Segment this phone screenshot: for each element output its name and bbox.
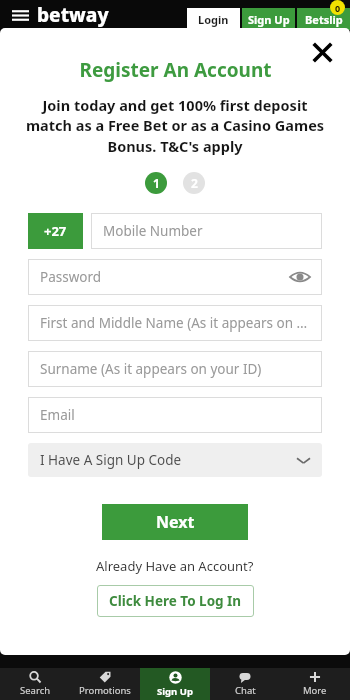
button[interactable]: Betslip bbox=[297, 8, 350, 30]
staticText: 0 bbox=[335, 2, 341, 14]
button[interactable]: Promotions bbox=[70, 668, 140, 700]
button[interactable]: 1 bbox=[145, 172, 167, 194]
staticText: Already Have an Account? bbox=[96, 557, 254, 575]
staticText: Mobile Number bbox=[103, 222, 203, 240]
staticText: Sign Up bbox=[248, 12, 290, 27]
button[interactable]: Show password bbox=[287, 264, 313, 290]
staticText: Login bbox=[198, 12, 229, 27]
staticText: Register An Account bbox=[79, 57, 272, 83]
staticText: Sign Up bbox=[157, 685, 193, 698]
staticText: Join today and get 100% first deposit ma… bbox=[20, 95, 330, 157]
staticText: +27 bbox=[44, 222, 67, 240]
button[interactable]: Chat bbox=[210, 668, 280, 700]
staticText: Click Here To Log In bbox=[109, 592, 242, 610]
button[interactable]: Sign Up bbox=[140, 668, 210, 700]
button[interactable]: Click Here To Log In bbox=[97, 585, 254, 617]
button[interactable]: Login bbox=[187, 8, 240, 30]
button[interactable]: Next bbox=[102, 504, 248, 540]
button[interactable]: Mobile Number bbox=[91, 213, 322, 249]
staticText: Betslip bbox=[305, 12, 343, 27]
button[interactable]: Sign Up bbox=[242, 8, 295, 30]
button[interactable]: Email bbox=[28, 397, 322, 433]
staticText: Password bbox=[40, 268, 102, 286]
button[interactable]: +27 bbox=[28, 213, 83, 249]
button[interactable]: More bbox=[280, 668, 350, 700]
button[interactable]: Menu bbox=[10, 5, 30, 25]
button[interactable]: I Have A Sign Up Code bbox=[28, 443, 322, 477]
staticText: First and Middle Name (As it appears on … bbox=[40, 314, 308, 332]
staticText: Chat bbox=[235, 684, 256, 697]
staticText: Next bbox=[156, 511, 195, 533]
staticText: 2 bbox=[191, 175, 198, 191]
staticText: 1 bbox=[153, 175, 160, 191]
staticText: Search bbox=[20, 684, 51, 697]
staticText: More bbox=[303, 684, 327, 697]
button[interactable]: Close bbox=[307, 37, 337, 67]
button[interactable]: Search bbox=[0, 668, 70, 700]
button[interactable]: Password bbox=[28, 259, 322, 295]
staticText: betway bbox=[37, 2, 109, 28]
staticText: Promotions bbox=[79, 684, 131, 697]
staticText: Email bbox=[40, 406, 75, 424]
button[interactable]: Surname (As it appears on your ID) bbox=[28, 351, 322, 387]
button[interactable]: First and Middle Name (As it appears on … bbox=[28, 305, 322, 341]
staticText: I Have A Sign Up Code bbox=[40, 451, 182, 469]
staticText: Surname (As it appears on your ID) bbox=[40, 360, 262, 378]
button[interactable]: 2 bbox=[183, 172, 205, 194]
